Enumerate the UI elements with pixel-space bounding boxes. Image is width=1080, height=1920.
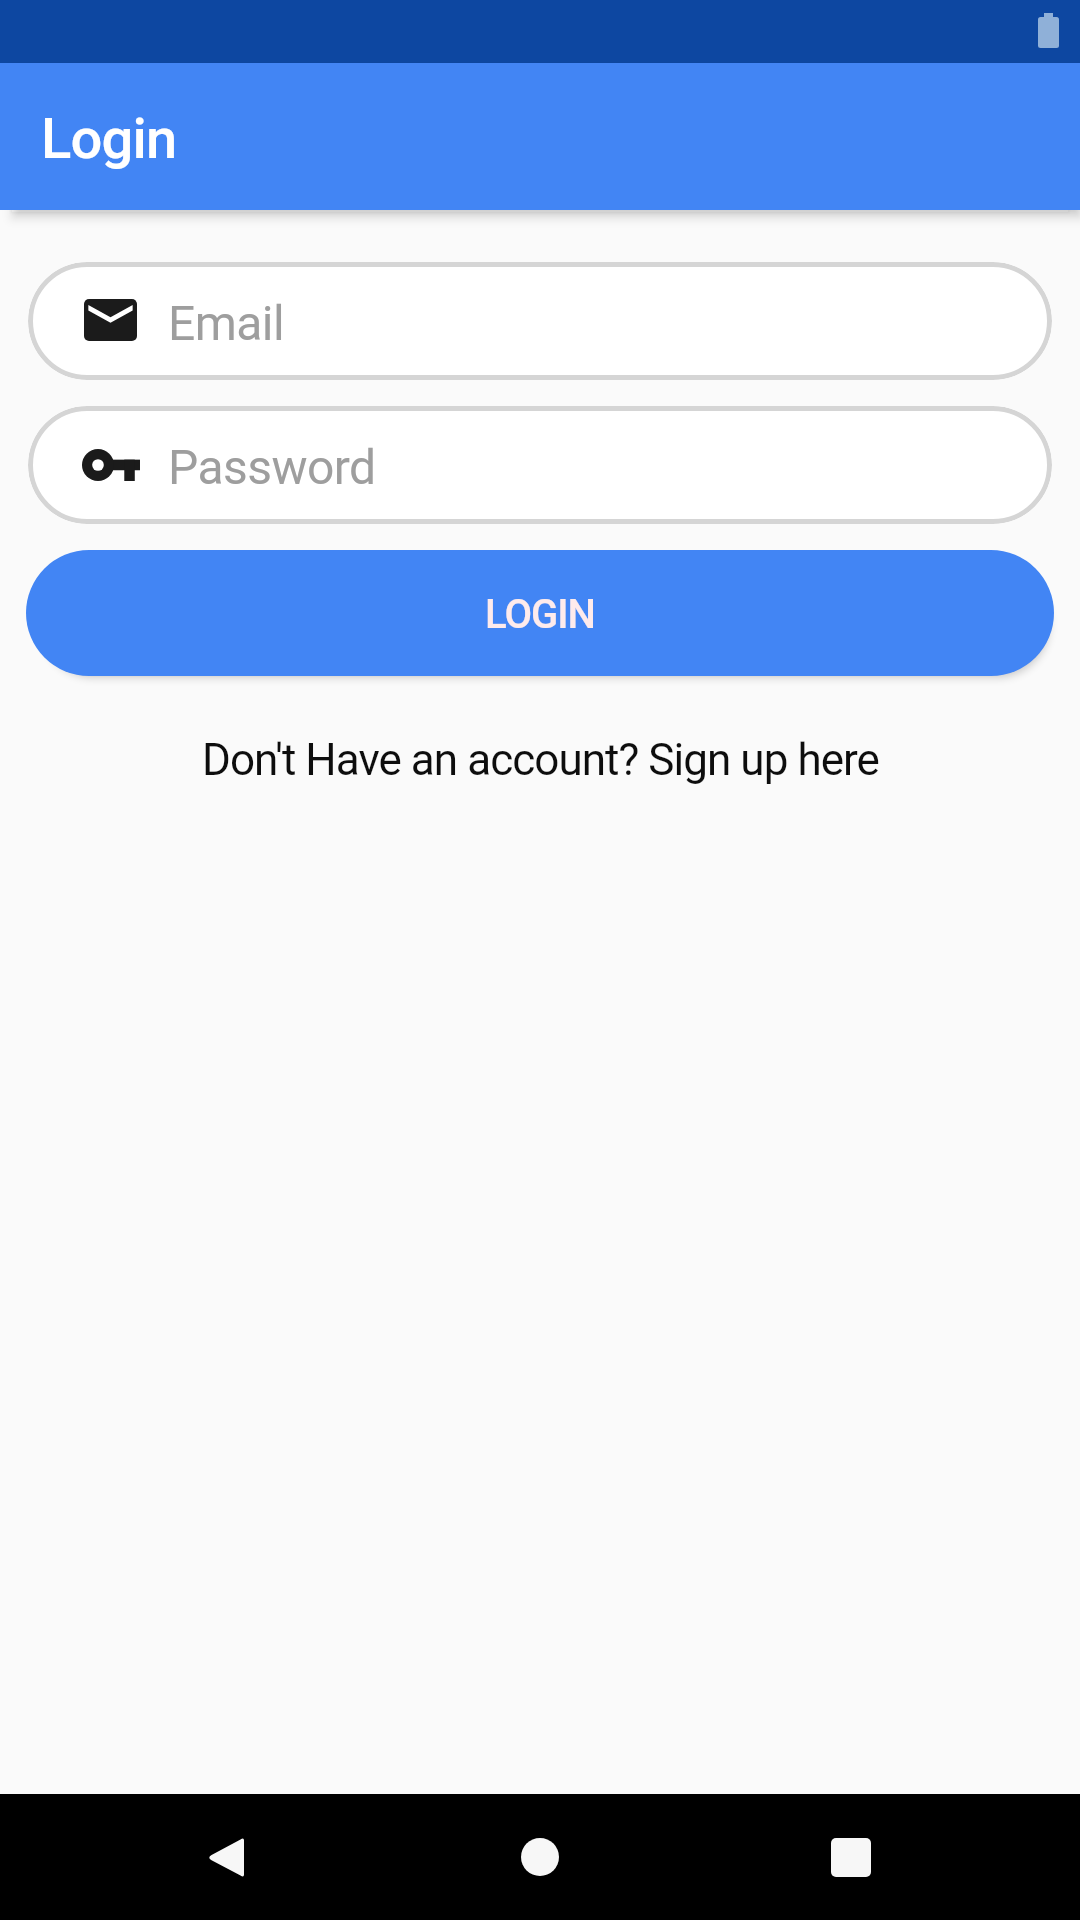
button[interactable]: LOGIN (26, 550, 1054, 676)
staticText: Email (168, 295, 285, 351)
button[interactable]: Recent apps (788, 1794, 914, 1920)
button[interactable]: Password (28, 406, 1052, 524)
button[interactable]: Don't Have an account? Sign up here (0, 734, 1080, 786)
button[interactable]: Home (477, 1794, 603, 1920)
button[interactable]: Email (28, 262, 1052, 380)
staticText: Password (168, 439, 376, 495)
staticText: Login (41, 106, 177, 172)
staticText: LOGIN (485, 591, 595, 638)
staticText: Don't Have an account? Sign up here (202, 734, 879, 786)
button[interactable]: Back (162, 1794, 288, 1920)
